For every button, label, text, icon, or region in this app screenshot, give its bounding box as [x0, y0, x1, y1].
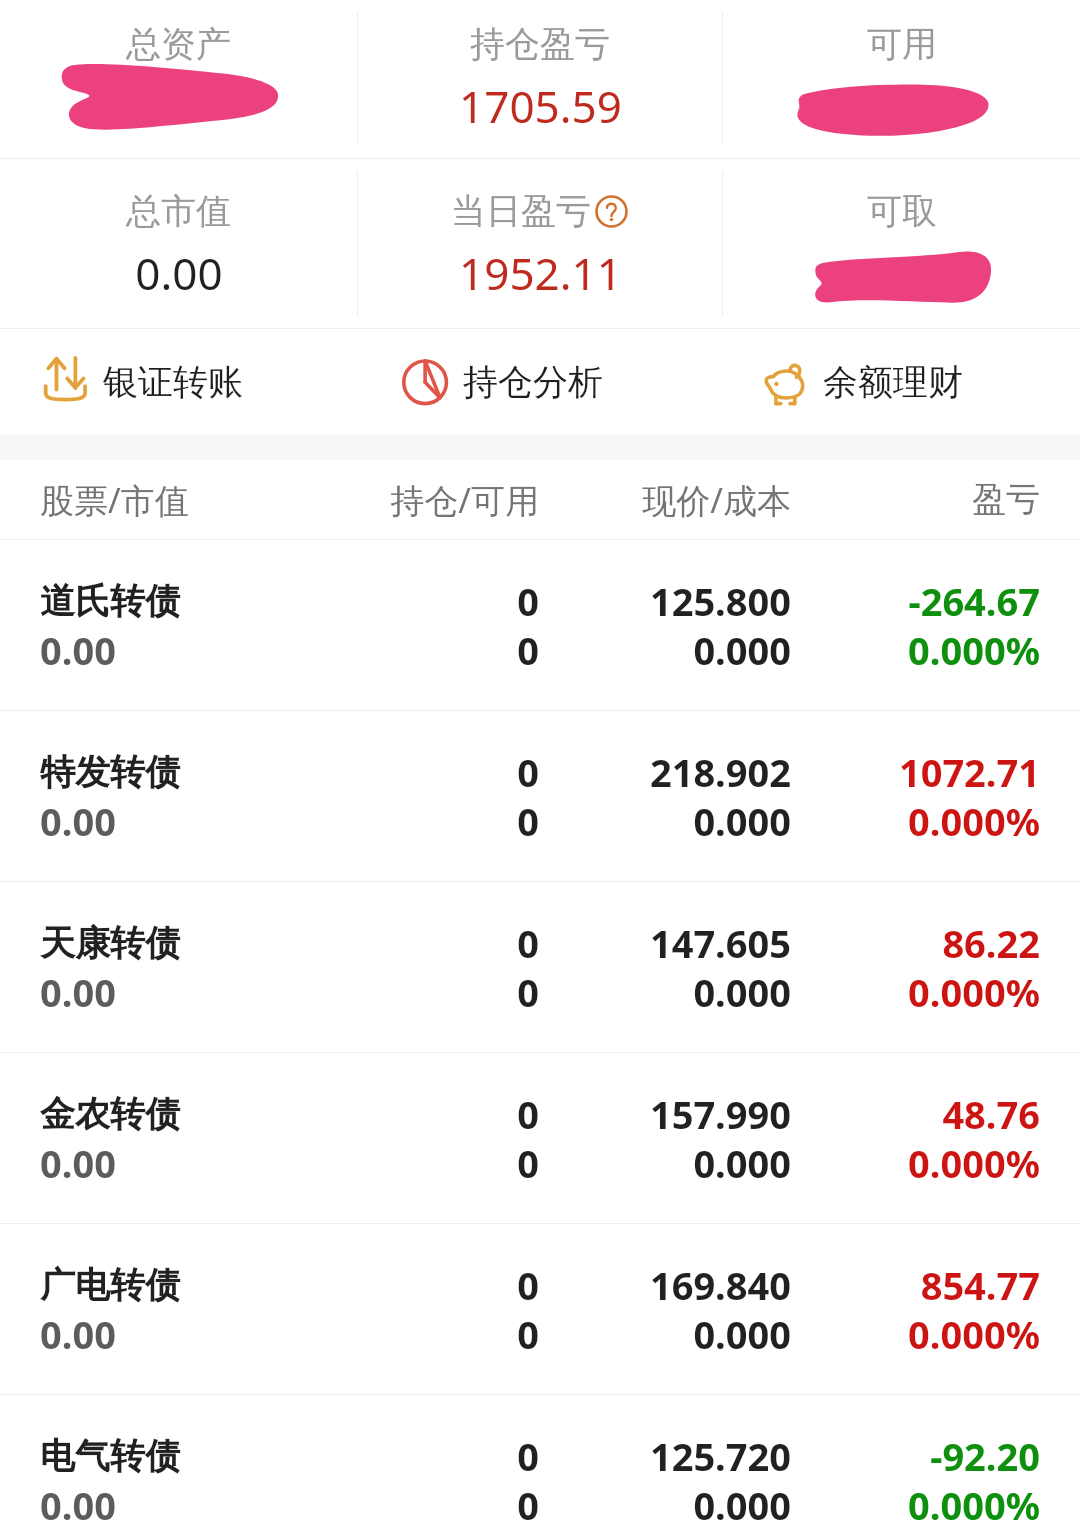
- button[interactable]: 可用: [723, 0, 1080, 158]
- staticText: 1952.11: [459, 243, 622, 303]
- button[interactable]: 余额理财: [720, 329, 1080, 434]
- staticText: 0: [301, 746, 539, 798]
- button[interactable]: 可取: [723, 159, 1080, 328]
- staticText: 0.00: [40, 1308, 301, 1360]
- staticText: 0: [301, 1137, 539, 1189]
- staticText: 157.990: [539, 1088, 791, 1140]
- button[interactable]: 银证转账: [0, 329, 360, 434]
- button[interactable]: 特发转债: [0, 711, 1080, 881]
- button[interactable]: 金农转债: [0, 1053, 1080, 1223]
- staticText: 可用: [867, 22, 937, 66]
- staticText: 总资产: [126, 22, 231, 66]
- staticText: 0.000%: [791, 624, 1040, 676]
- button[interactable]: 天康转债: [0, 882, 1080, 1052]
- staticText: 广电转债: [40, 1263, 301, 1307]
- staticText: 0: [301, 1308, 539, 1360]
- staticText: 1705.59: [459, 76, 622, 136]
- staticText: 0.000%: [791, 1308, 1040, 1360]
- staticText: 0.000%: [791, 795, 1040, 847]
- staticText: 0.000: [539, 1308, 791, 1360]
- staticText: 147.605: [539, 917, 791, 969]
- button[interactable]: 道氏转债: [0, 540, 1080, 710]
- staticText: 0.000%: [791, 966, 1040, 1018]
- staticText: 1072.71: [791, 746, 1040, 798]
- other: 持仓分析: [400, 355, 454, 409]
- staticText: 总市值: [126, 189, 231, 233]
- staticText: 48.76: [791, 1088, 1040, 1140]
- staticText: 银证转账: [103, 360, 243, 404]
- staticText: 0.00: [40, 1137, 301, 1189]
- staticText: 盈亏: [791, 478, 1040, 521]
- staticText: 0.00: [40, 795, 301, 847]
- staticText: 持仓分析: [463, 360, 603, 404]
- staticText: 0.00: [40, 1479, 301, 1526]
- button[interactable]: 电气转债: [0, 1395, 1080, 1529]
- button[interactable]: 总市值: [0, 159, 357, 328]
- staticText: 0.00: [40, 624, 301, 676]
- staticText: 0.00: [40, 966, 301, 1018]
- staticText: 854.77: [791, 1259, 1040, 1311]
- button[interactable]: 持仓盈亏: [358, 0, 722, 158]
- staticText: 金农转债: [40, 1092, 301, 1136]
- staticText: 0: [301, 1479, 539, 1526]
- other: 银证转账: [40, 355, 94, 409]
- staticText: 0.000: [539, 795, 791, 847]
- staticText: 持仓/可用: [301, 477, 539, 523]
- staticText: 125.800: [539, 575, 791, 627]
- button[interactable]: 广电转债: [0, 1224, 1080, 1394]
- staticText: 当日盈亏: [451, 189, 591, 233]
- staticText: 0.000: [539, 966, 791, 1018]
- staticText: 0: [301, 795, 539, 847]
- staticText: 0: [301, 966, 539, 1018]
- other: 余额理财: [760, 355, 814, 409]
- staticText: 125.720: [539, 1430, 791, 1482]
- staticText: 0: [301, 1259, 539, 1311]
- button[interactable]: 持仓分析: [360, 329, 720, 434]
- staticText: 0: [301, 917, 539, 969]
- staticText: 天康转债: [40, 921, 301, 965]
- button[interactable]: 当日盈亏: [358, 159, 722, 328]
- staticText: 道氏转债: [40, 579, 301, 623]
- staticText: -92.20: [791, 1430, 1040, 1482]
- button[interactable]: 总资产: [0, 0, 357, 158]
- staticText: 0.000%: [791, 1479, 1040, 1526]
- staticText: 股票/市值: [40, 477, 301, 523]
- staticText: 218.902: [539, 746, 791, 798]
- staticText: 可取: [867, 189, 937, 233]
- staticText: 0.000: [539, 624, 791, 676]
- staticText: -264.67: [791, 575, 1040, 627]
- staticText: 0.000: [539, 1479, 791, 1526]
- staticText: 0.000: [539, 1137, 791, 1189]
- staticText: 0: [301, 575, 539, 627]
- staticText: 余额理财: [823, 360, 963, 404]
- staticText: 169.840: [539, 1259, 791, 1311]
- staticText: 0: [301, 1088, 539, 1140]
- staticText: 0.00: [135, 243, 223, 303]
- staticText: 0.000%: [791, 1137, 1040, 1189]
- staticText: 0: [301, 1430, 539, 1482]
- staticText: 86.22: [791, 917, 1040, 969]
- staticText: 现价/成本: [539, 477, 791, 523]
- staticText: 持仓盈亏: [470, 22, 610, 66]
- staticText: 特发转债: [40, 750, 301, 794]
- staticText: 0: [301, 624, 539, 676]
- staticText: 电气转债: [40, 1434, 301, 1478]
